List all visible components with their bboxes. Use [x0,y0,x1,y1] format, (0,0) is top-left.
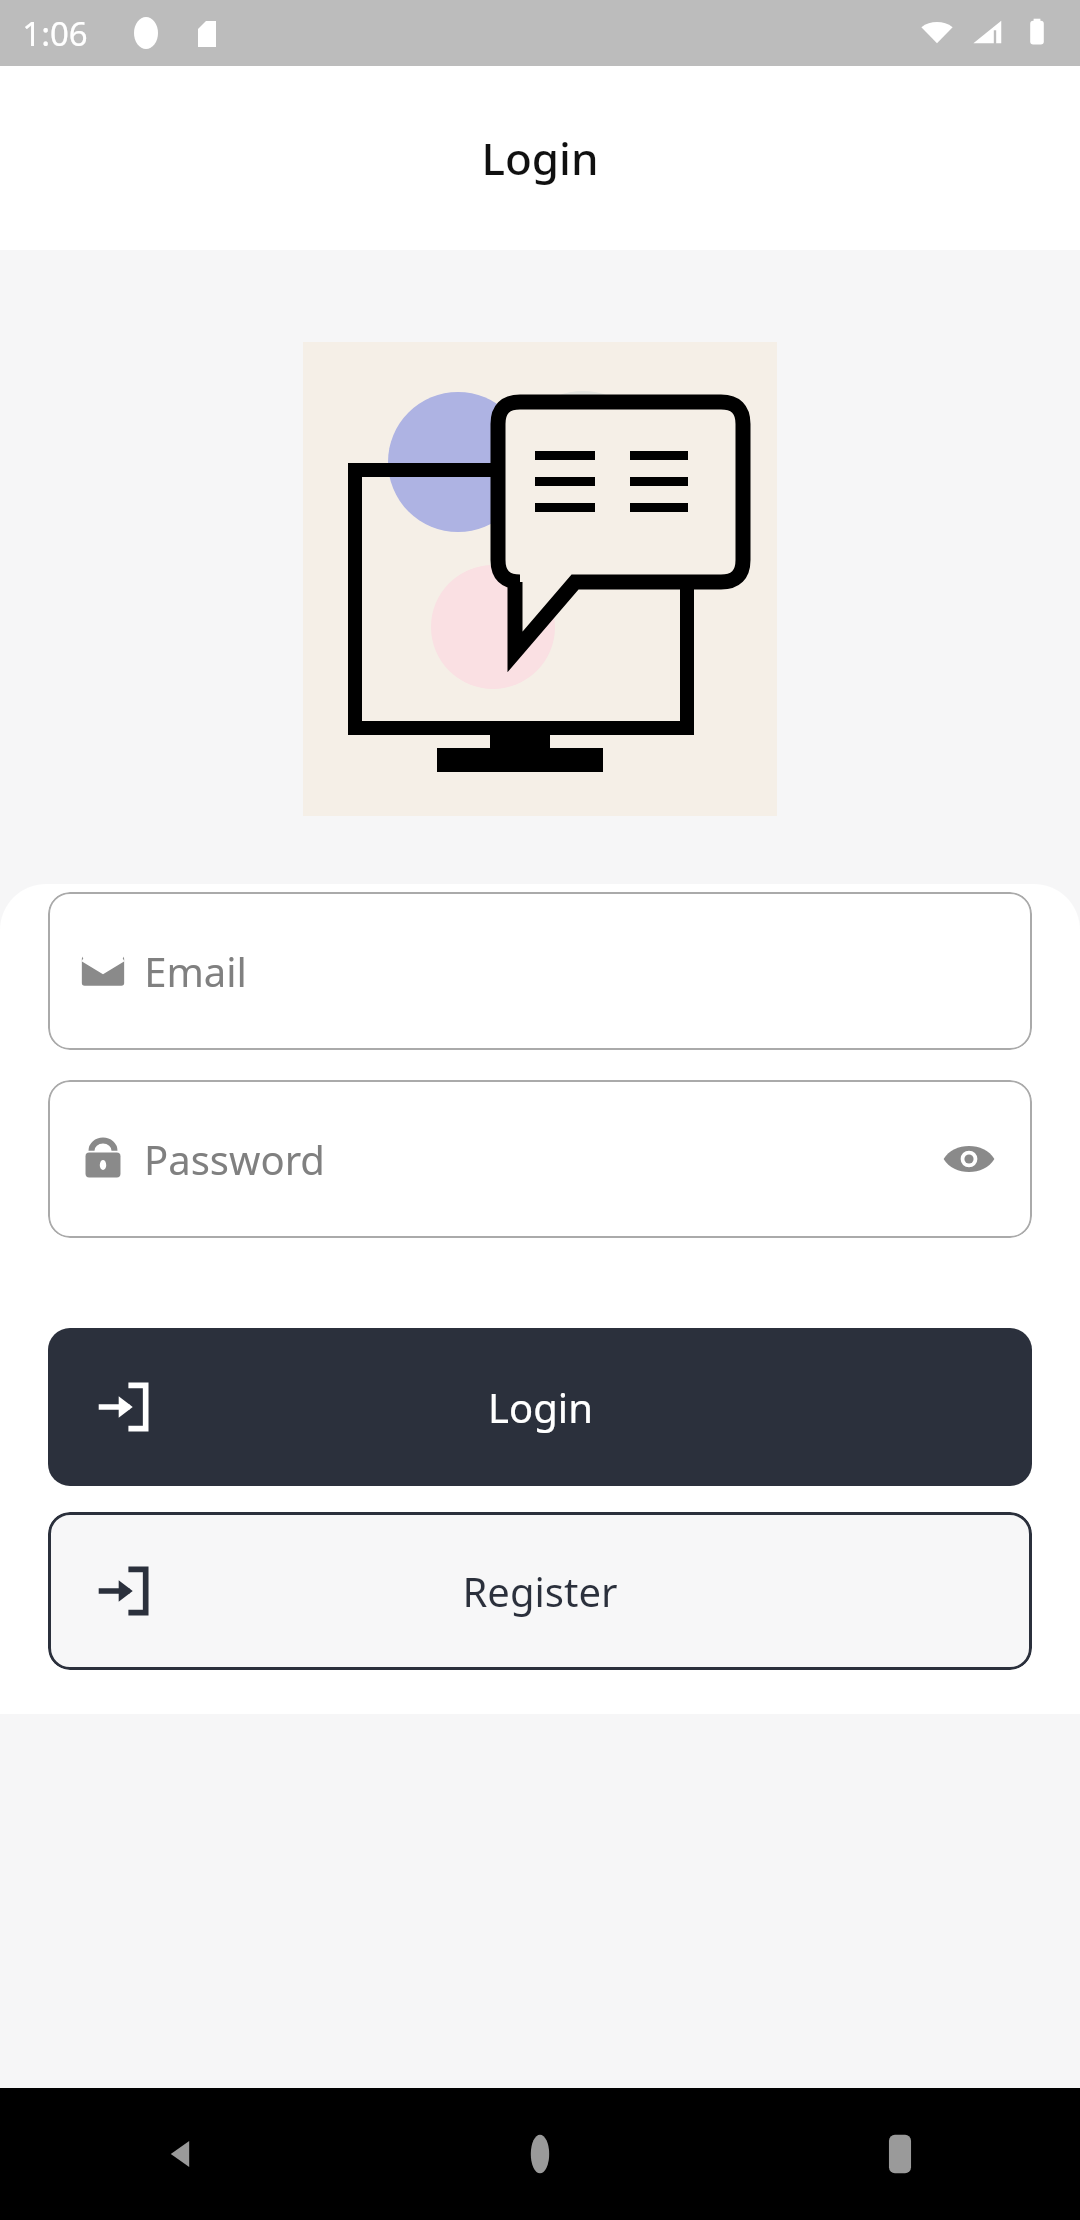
button[interactable]: Login [48,1328,1032,1486]
staticText: Login [488,1380,593,1434]
button[interactable]: Toggle password visibility [934,1124,1004,1194]
staticText: Password [144,1132,325,1186]
button[interactable]: Email [48,892,1032,1050]
button[interactable]: Recent apps [720,2088,1080,2220]
button[interactable]: Password [48,1080,1032,1238]
staticText: 1:06 [22,11,88,56]
button[interactable]: Back [0,2088,360,2220]
button[interactable]: Home [360,2088,720,2220]
staticText: Register [462,1564,618,1618]
staticText: Email [144,944,247,998]
staticText: Login [481,128,599,188]
button[interactable]: Register [48,1512,1032,1670]
